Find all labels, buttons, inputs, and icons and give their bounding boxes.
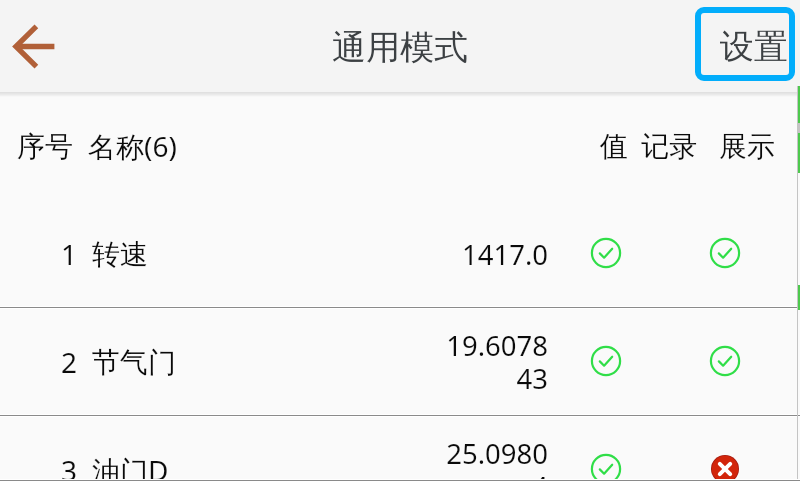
- staticText: 设置: [720, 25, 788, 68]
- button[interactable]: Display enabled: [710, 346, 740, 376]
- button[interactable]: 设置: [695, 7, 795, 81]
- staticText: 序号: [17, 129, 73, 164]
- staticText: 值: [600, 129, 628, 164]
- staticText: 记录: [641, 129, 697, 164]
- staticText: 节气门: [92, 345, 176, 380]
- button[interactable]: 2: [0, 308, 800, 416]
- staticText: 25.0980 4: [446, 435, 548, 481]
- button[interactable]: Display enabled: [710, 238, 740, 268]
- button[interactable]: 3: [0, 416, 800, 481]
- staticText: 名称(6): [88, 127, 177, 165]
- staticText: 转速: [92, 237, 148, 272]
- staticText: 展示: [719, 129, 775, 164]
- staticText: 1417.0: [461, 236, 548, 273]
- staticText: 1: [61, 235, 78, 273]
- staticText: 3: [61, 451, 78, 481]
- staticText: 油门D: [92, 451, 169, 481]
- button[interactable]: Recording enabled: [591, 346, 621, 376]
- button[interactable]: 1: [0, 200, 800, 308]
- button[interactable]: Recording enabled: [591, 238, 621, 268]
- button[interactable]: Recording enabled: [591, 454, 621, 481]
- staticText: 通用模式: [332, 26, 468, 69]
- staticText: 2: [61, 343, 78, 381]
- staticText: 19.6078 43: [446, 327, 548, 397]
- button[interactable]: Display disabled: [710, 454, 740, 481]
- button[interactable]: Back: [0, 11, 72, 83]
